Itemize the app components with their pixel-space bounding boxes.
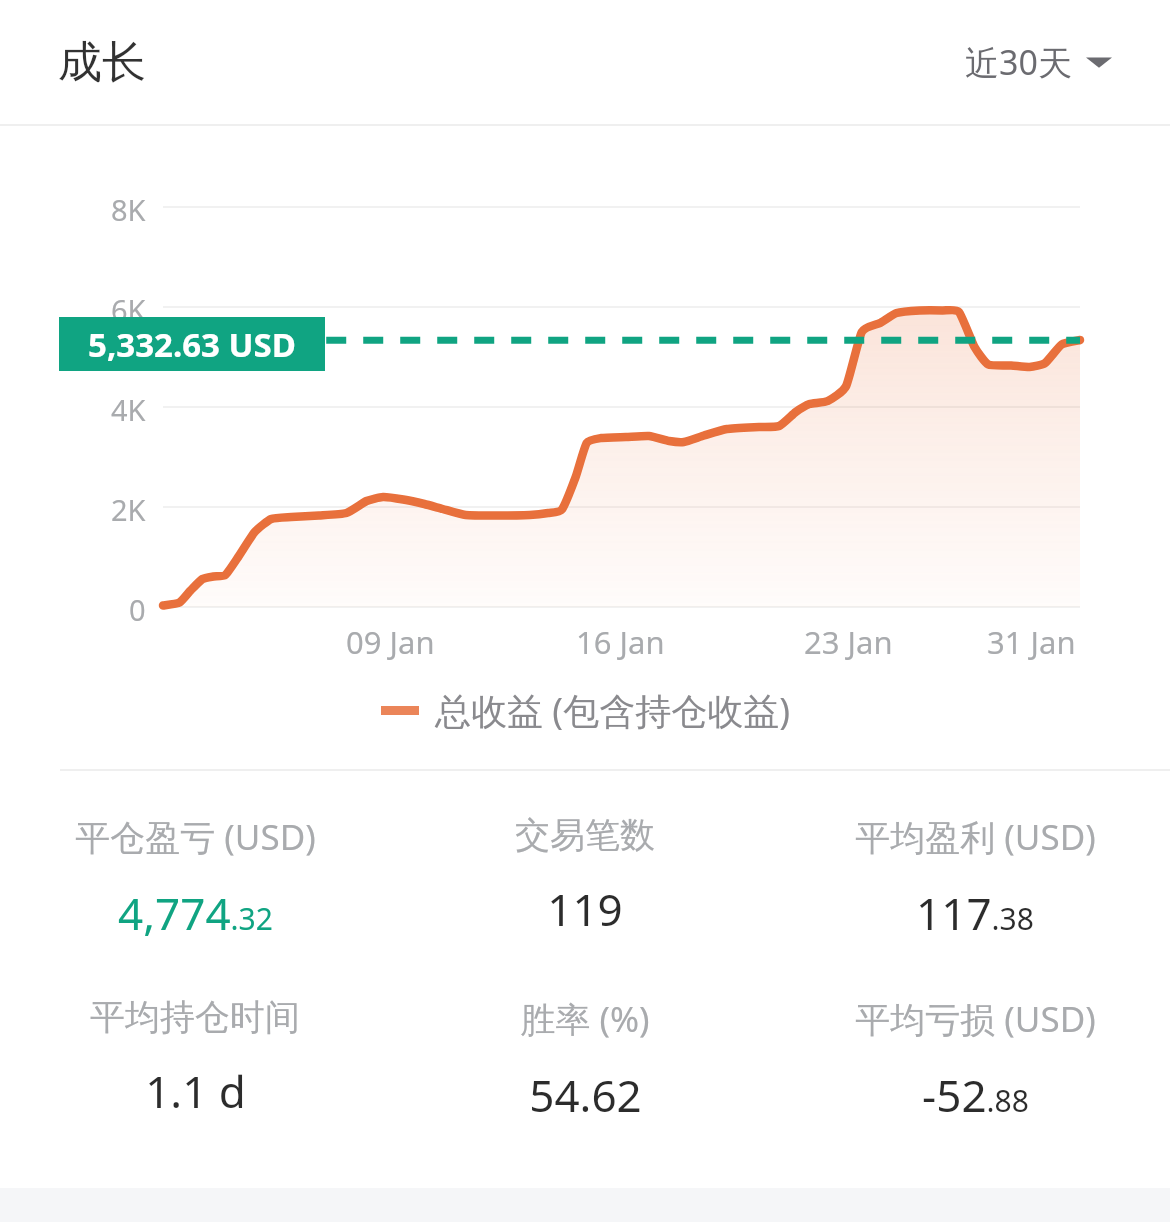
staticText: 16 Jan [576, 621, 665, 663]
staticText: 成长 [58, 35, 146, 90]
staticText: 54.62 [529, 1065, 642, 1125]
staticText: 1.1 d [145, 1061, 246, 1121]
staticText: 胜率 (%) [520, 995, 650, 1043]
button[interactable]: 平均盈利 (USD) [780, 813, 1170, 943]
staticText: 平均盈利 (USD) [855, 813, 1096, 861]
staticText: 09 Jan [346, 621, 435, 663]
button[interactable]: 胜率 (%) [390, 995, 780, 1125]
button[interactable]: 交易笔数 [390, 813, 780, 939]
staticText: 8K [111, 190, 146, 229]
staticText: 119 [547, 879, 623, 939]
staticText: 平均持仓时间 [90, 995, 300, 1039]
staticText: 交易笔数 [515, 813, 655, 857]
staticText: 117.38 [916, 883, 1034, 943]
button[interactable]: 5,332.63 USD [59, 317, 325, 371]
staticText: 平仓盈亏 (USD) [75, 813, 316, 861]
staticText: 2K [111, 490, 146, 529]
button[interactable]: 平均持仓时间 [0, 995, 390, 1121]
staticText: 31 Jan [987, 621, 1076, 663]
staticText: -52.88 [922, 1065, 1029, 1125]
staticText: 0 [129, 590, 146, 629]
staticText: 5,332.63 USD [88, 322, 296, 367]
staticText: 总收益 (包含持仓收益) [435, 686, 790, 735]
button[interactable]: 近30天 [941, 25, 1170, 99]
staticText: 4,774.32 [118, 883, 273, 943]
staticText: 4K [111, 390, 146, 429]
button[interactable]: 平仓盈亏 (USD) [0, 813, 390, 943]
staticText: 近30天 [965, 39, 1072, 85]
staticText: 23 Jan [804, 621, 893, 663]
button[interactable]: 平均亏损 (USD) [780, 995, 1170, 1125]
staticText: 平均亏损 (USD) [855, 995, 1096, 1043]
staticText: 6K [111, 290, 146, 329]
